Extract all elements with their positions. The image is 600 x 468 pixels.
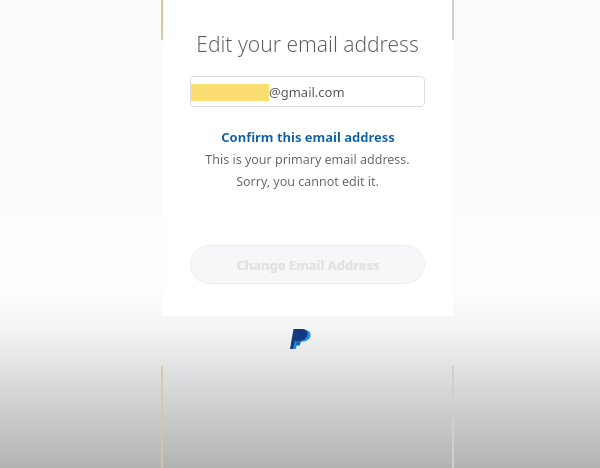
staticText: This is your primary email address. bbox=[205, 151, 410, 168]
staticText: Confirm this email address bbox=[221, 128, 395, 146]
staticText: Change Email Address bbox=[236, 256, 380, 274]
button[interactable]: @gmail.com bbox=[190, 76, 425, 107]
staticText: Sorry, you cannot edit it. bbox=[236, 173, 379, 190]
button[interactable]: Change Email Address bbox=[190, 245, 425, 284]
other: PayPal bbox=[290, 328, 312, 350]
staticText: @gmail.com bbox=[269, 83, 345, 101]
staticText: Edit your email address bbox=[196, 30, 419, 59]
button[interactable]: Confirm this email address bbox=[221, 128, 395, 146]
